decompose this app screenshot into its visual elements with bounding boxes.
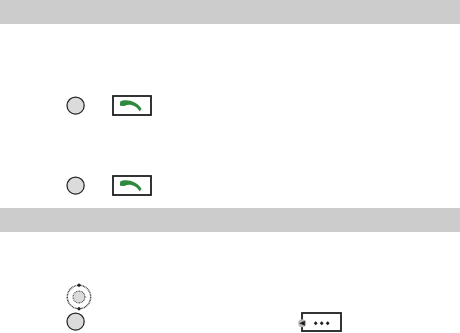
button[interactable]: Outgoing call: [113, 96, 151, 115]
button[interactable]: More options: [302, 313, 341, 331]
button[interactable]: Contact: [67, 313, 84, 330]
button[interactable]: Outgoing call: [113, 176, 151, 195]
button[interactable]: Outgoing call: [0, 168, 460, 202]
button[interactable]: Selected option: [65, 283, 93, 311]
button[interactable]: Outgoing call: [0, 88, 460, 122]
